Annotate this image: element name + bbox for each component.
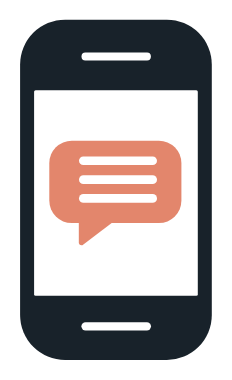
button[interactable]: Open messages: [0, 0, 232, 380]
